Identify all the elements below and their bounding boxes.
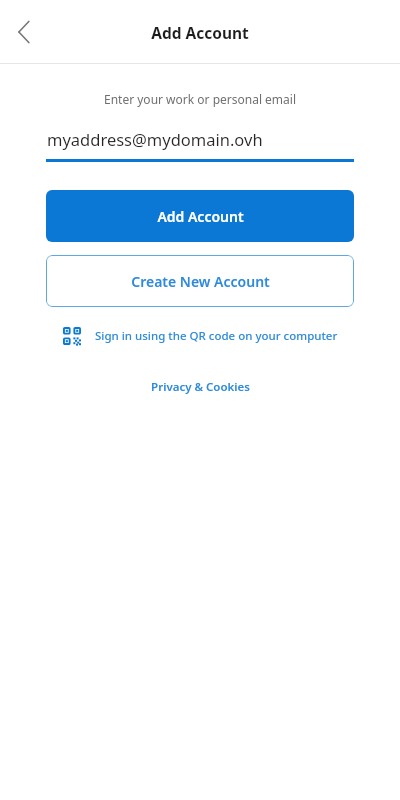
- button[interactable]: myaddress@mydomain.ovh: [46, 128, 354, 162]
- staticText: Add Account: [151, 22, 249, 43]
- staticText: myaddress@mydomain.ovh: [47, 128, 263, 150]
- button[interactable]: Add Account: [46, 190, 354, 242]
- button[interactable]: Sign in using the QR code on your comput…: [59, 324, 342, 348]
- staticText: Add Account: [157, 207, 244, 226]
- button[interactable]: Back: [0, 8, 48, 56]
- button[interactable]: Create New Account: [46, 255, 354, 307]
- staticText: Enter your work or personal email: [0, 91, 400, 107]
- staticText: Create New Account: [131, 272, 270, 291]
- button[interactable]: Privacy & Cookies: [143, 376, 258, 398]
- staticText: Sign in using the QR code on your comput…: [95, 328, 338, 344]
- staticText: Privacy & Cookies: [151, 379, 250, 395]
